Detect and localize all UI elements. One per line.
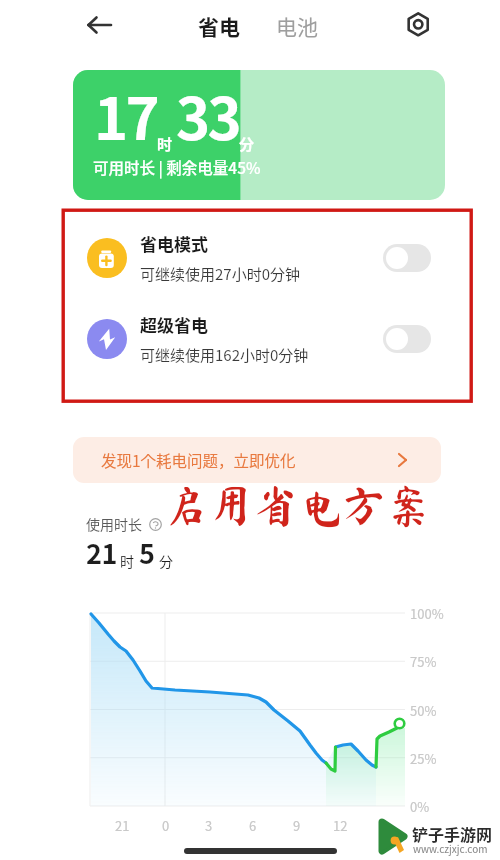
staticText: 可用时长 | 剩余电量45% bbox=[93, 156, 261, 178]
staticText: 启用省电方案 bbox=[162, 485, 429, 529]
staticText: 启用省电方案 bbox=[164, 483, 431, 527]
staticText: www.czjxjc.com bbox=[413, 841, 488, 855]
staticText: 时 bbox=[120, 551, 134, 571]
button[interactable]: Back bbox=[85, 11, 113, 39]
staticText: 启用省电方案 bbox=[166, 481, 433, 525]
staticText: 启用省电方案 bbox=[164, 480, 431, 524]
staticText: 21 bbox=[86, 533, 117, 572]
button[interactable]: 超级省电 bbox=[383, 325, 431, 353]
button[interactable]: 17 bbox=[73, 70, 445, 200]
staticText: 使用时长 bbox=[86, 514, 142, 534]
staticText: 5 bbox=[139, 533, 155, 572]
staticText: 发现1个耗电问题，立即优化 bbox=[101, 449, 296, 471]
button[interactable]: 省电模式 bbox=[67, 218, 467, 298]
staticText: 分 bbox=[159, 551, 173, 571]
button[interactable]: Settings bbox=[404, 10, 432, 38]
staticText: 21 bbox=[115, 816, 130, 835]
staticText: 启用省电方案 bbox=[161, 483, 428, 527]
button[interactable]: 省电模式 bbox=[383, 244, 431, 272]
button[interactable]: 发现1个耗电问题，立即优化 bbox=[73, 437, 441, 483]
staticText: 省电 bbox=[198, 11, 240, 41]
staticText: 时 bbox=[157, 133, 173, 155]
staticText: 可继续使用162小时0分钟 bbox=[140, 344, 309, 366]
staticText: 启用省电方案 bbox=[164, 486, 431, 530]
staticText: 启用省电方案 bbox=[167, 483, 434, 527]
staticText: 100% bbox=[410, 604, 444, 623]
staticText: 17 bbox=[94, 73, 157, 157]
staticText: 3 bbox=[205, 816, 213, 835]
button[interactable]: 超级省电 bbox=[67, 299, 467, 379]
staticText: 50% bbox=[410, 701, 437, 720]
staticText: 6 bbox=[249, 816, 257, 835]
staticText: 分 bbox=[239, 133, 255, 155]
staticText: 铲子手游网 bbox=[412, 822, 493, 845]
staticText: 25% bbox=[410, 749, 437, 768]
staticText: 9 bbox=[293, 816, 301, 835]
button[interactable]: 省电 bbox=[198, 11, 240, 41]
staticText: 超级省电 bbox=[140, 312, 208, 337]
staticText: 75% bbox=[410, 652, 437, 671]
staticText: 启用省电方案 bbox=[162, 481, 429, 525]
staticText: 12 bbox=[333, 816, 348, 835]
staticText: 可继续使用27小时0分钟 bbox=[140, 263, 300, 285]
staticText: 启用省电方案 bbox=[166, 485, 433, 529]
staticText: 0 bbox=[162, 816, 170, 835]
staticText: 省电模式 bbox=[140, 231, 208, 256]
staticText: 0% bbox=[410, 797, 430, 816]
staticText: 电池 bbox=[276, 11, 318, 41]
button[interactable]: 电池 bbox=[276, 11, 318, 41]
staticText: 33 bbox=[176, 73, 239, 157]
